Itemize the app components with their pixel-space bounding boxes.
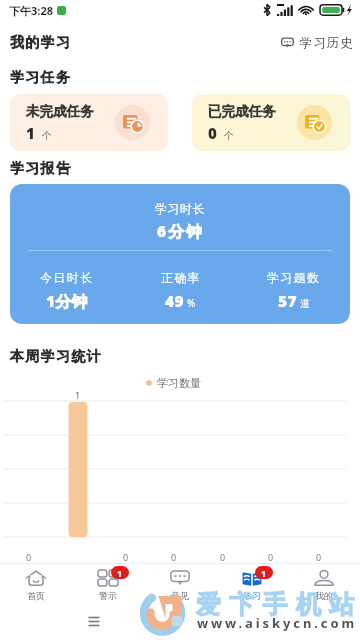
staticText: 未完成任务 — [26, 103, 94, 120]
staticText: 首页 — [27, 590, 45, 601]
staticText: 本周学习统计 — [10, 348, 102, 366]
staticText: 个 — [224, 129, 234, 142]
button[interactable]: 1 — [72, 564, 144, 605]
staticText: 0 — [268, 551, 274, 563]
button[interactable]: 已完成任务 — [192, 94, 350, 151]
staticText: 学习历史 — [300, 35, 354, 51]
staticText: 我的学习 — [10, 34, 72, 52]
staticText: 1 — [26, 123, 35, 143]
staticText: 学习数量 — [157, 376, 201, 390]
other: Menu — [88, 616, 100, 627]
button[interactable]: 未完成任务 — [10, 94, 168, 151]
staticText: www.aiskycn.com — [197, 614, 358, 632]
staticText: 学习题数 — [267, 270, 321, 285]
button[interactable]: 首页 — [0, 564, 72, 605]
staticText: 0 — [26, 551, 32, 563]
staticText: 个 — [42, 129, 52, 142]
staticText: % — [187, 296, 196, 310]
button[interactable]: 我的 — [288, 564, 360, 605]
staticText: 学习时长 — [155, 201, 205, 216]
staticText: 下午3:28 — [9, 3, 53, 18]
staticText: 学习任务 — [10, 69, 72, 87]
staticText: 学习报告 — [10, 160, 72, 178]
staticText: 0 — [220, 551, 226, 563]
staticText: 1 — [75, 389, 81, 401]
staticText: 6分钟 — [157, 220, 204, 241]
staticText: 警示 — [99, 590, 117, 601]
staticText: 我的 — [315, 590, 333, 601]
staticText: 今日时长 — [40, 270, 94, 285]
button[interactable]: 意见 — [144, 564, 216, 605]
button[interactable]: 学习历史 — [271, 31, 360, 55]
button[interactable]: 学习时长 — [10, 184, 350, 324]
staticText: 意见 — [171, 590, 189, 601]
staticText: 学习 — [243, 590, 261, 601]
staticText: 1 — [261, 567, 267, 579]
staticText: 正确率 — [161, 270, 201, 285]
staticText: 1分钟 — [46, 290, 88, 311]
button[interactable]: 1 — [216, 564, 288, 605]
staticText: 57 — [278, 290, 297, 311]
staticText: 爱卞手机站 — [192, 589, 358, 620]
staticText: 道 — [300, 297, 310, 310]
staticText: 1 — [117, 567, 123, 579]
staticText: 0 — [171, 551, 177, 563]
staticText: 0 — [316, 551, 322, 563]
staticText: 0 — [208, 123, 217, 143]
staticText: 49 — [165, 290, 184, 311]
staticText: 已完成任务 — [208, 103, 276, 120]
staticText: 0 — [123, 551, 129, 563]
